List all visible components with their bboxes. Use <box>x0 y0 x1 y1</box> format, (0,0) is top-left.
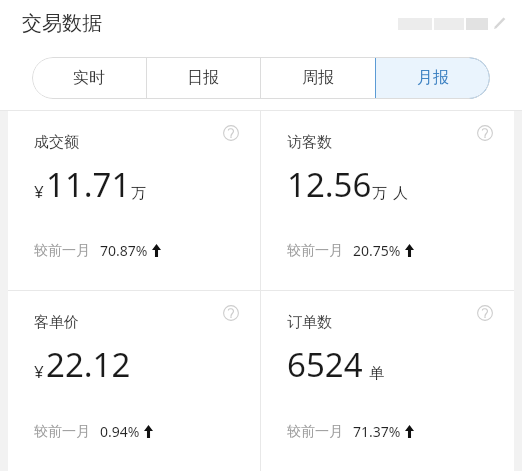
staticText: 22.12 <box>46 342 131 387</box>
staticText: 日报 <box>187 68 219 88</box>
button[interactable]: Help about 访客数 <box>261 111 514 290</box>
staticText: 单 <box>369 364 384 383</box>
staticText: 6524 <box>287 342 363 387</box>
button[interactable]: Help about 成交额 <box>8 111 260 290</box>
staticText: 20.75% <box>353 241 401 260</box>
button[interactable]: Help about 订单数 <box>261 291 514 471</box>
staticText: 月报 <box>417 68 449 88</box>
button[interactable]: Help about 客单价 <box>8 291 260 471</box>
button[interactable]: Help about 访客数 <box>474 122 496 144</box>
staticText: 较前一月 <box>287 423 343 441</box>
staticText: 较前一月 <box>287 242 343 260</box>
button[interactable]: 周报 <box>260 57 375 99</box>
button[interactable]: Help about 订单数 <box>474 302 496 324</box>
staticText: 实时 <box>73 68 105 88</box>
staticText: 万 <box>131 184 146 203</box>
staticText: 万 <box>372 184 387 203</box>
button[interactable]: 月报 <box>375 57 490 99</box>
staticText: 交易数据 <box>22 11 102 36</box>
staticText: 较前一月 <box>34 242 90 260</box>
staticText: 成交额 <box>34 133 79 152</box>
staticText: 11.71 <box>46 162 131 207</box>
button[interactable]: 日报 <box>146 57 260 99</box>
staticText: 0.94% <box>100 422 140 441</box>
staticText: 12.56 <box>287 162 372 207</box>
staticText: 71.37% <box>353 422 401 441</box>
button[interactable]: Help about 客单价 <box>220 302 242 324</box>
staticText: 订单数 <box>287 313 332 332</box>
staticText: ¥ <box>34 360 44 383</box>
staticText: 客单价 <box>34 313 79 332</box>
button[interactable]: 实时 <box>32 57 146 99</box>
button[interactable]: Help about 成交额 <box>220 122 242 144</box>
staticText: 人 <box>393 184 408 203</box>
staticText: ¥ <box>34 180 44 203</box>
staticText: 70.87% <box>100 241 148 260</box>
staticText: 较前一月 <box>34 423 90 441</box>
staticText: 访客数 <box>287 133 332 152</box>
staticText: 周报 <box>302 68 334 88</box>
button[interactable]: Edit shop name <box>396 13 508 34</box>
